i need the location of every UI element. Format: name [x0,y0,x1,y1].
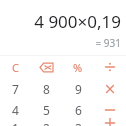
button[interactable]: 2 [31,120,62,126]
staticText: 6 [75,102,82,118]
staticText: 8 [43,81,50,97]
button[interactable]: 4 [0,99,31,120]
button[interactable]: 6 [62,99,94,120]
staticText: = 931 [95,36,121,50]
button[interactable]: % [62,56,94,78]
button[interactable]: 3 [62,120,94,126]
staticText: 5 [43,102,50,118]
button[interactable]: Plus [94,120,126,126]
staticText: 2 [43,120,50,126]
staticText: 4 [12,102,19,118]
staticText: 7 [12,81,19,97]
button[interactable]: Divide [94,56,126,78]
staticText: C [12,60,19,75]
button[interactable]: 1 [0,120,31,126]
staticText: 3 [75,120,82,126]
button[interactable]: 8 [31,78,62,99]
staticText: 1 [12,120,19,126]
button[interactable]: 7 [0,78,31,99]
staticText: 9 [75,81,82,97]
staticText: 4 900×0,19 [34,10,121,33]
button[interactable]: Backspace [31,56,62,78]
button[interactable]: Multiply [94,78,126,99]
button[interactable]: 5 [31,99,62,120]
staticText: % [73,60,83,75]
button[interactable]: Minus [94,99,126,120]
button[interactable]: C [0,56,31,78]
button[interactable]: 9 [62,78,94,99]
